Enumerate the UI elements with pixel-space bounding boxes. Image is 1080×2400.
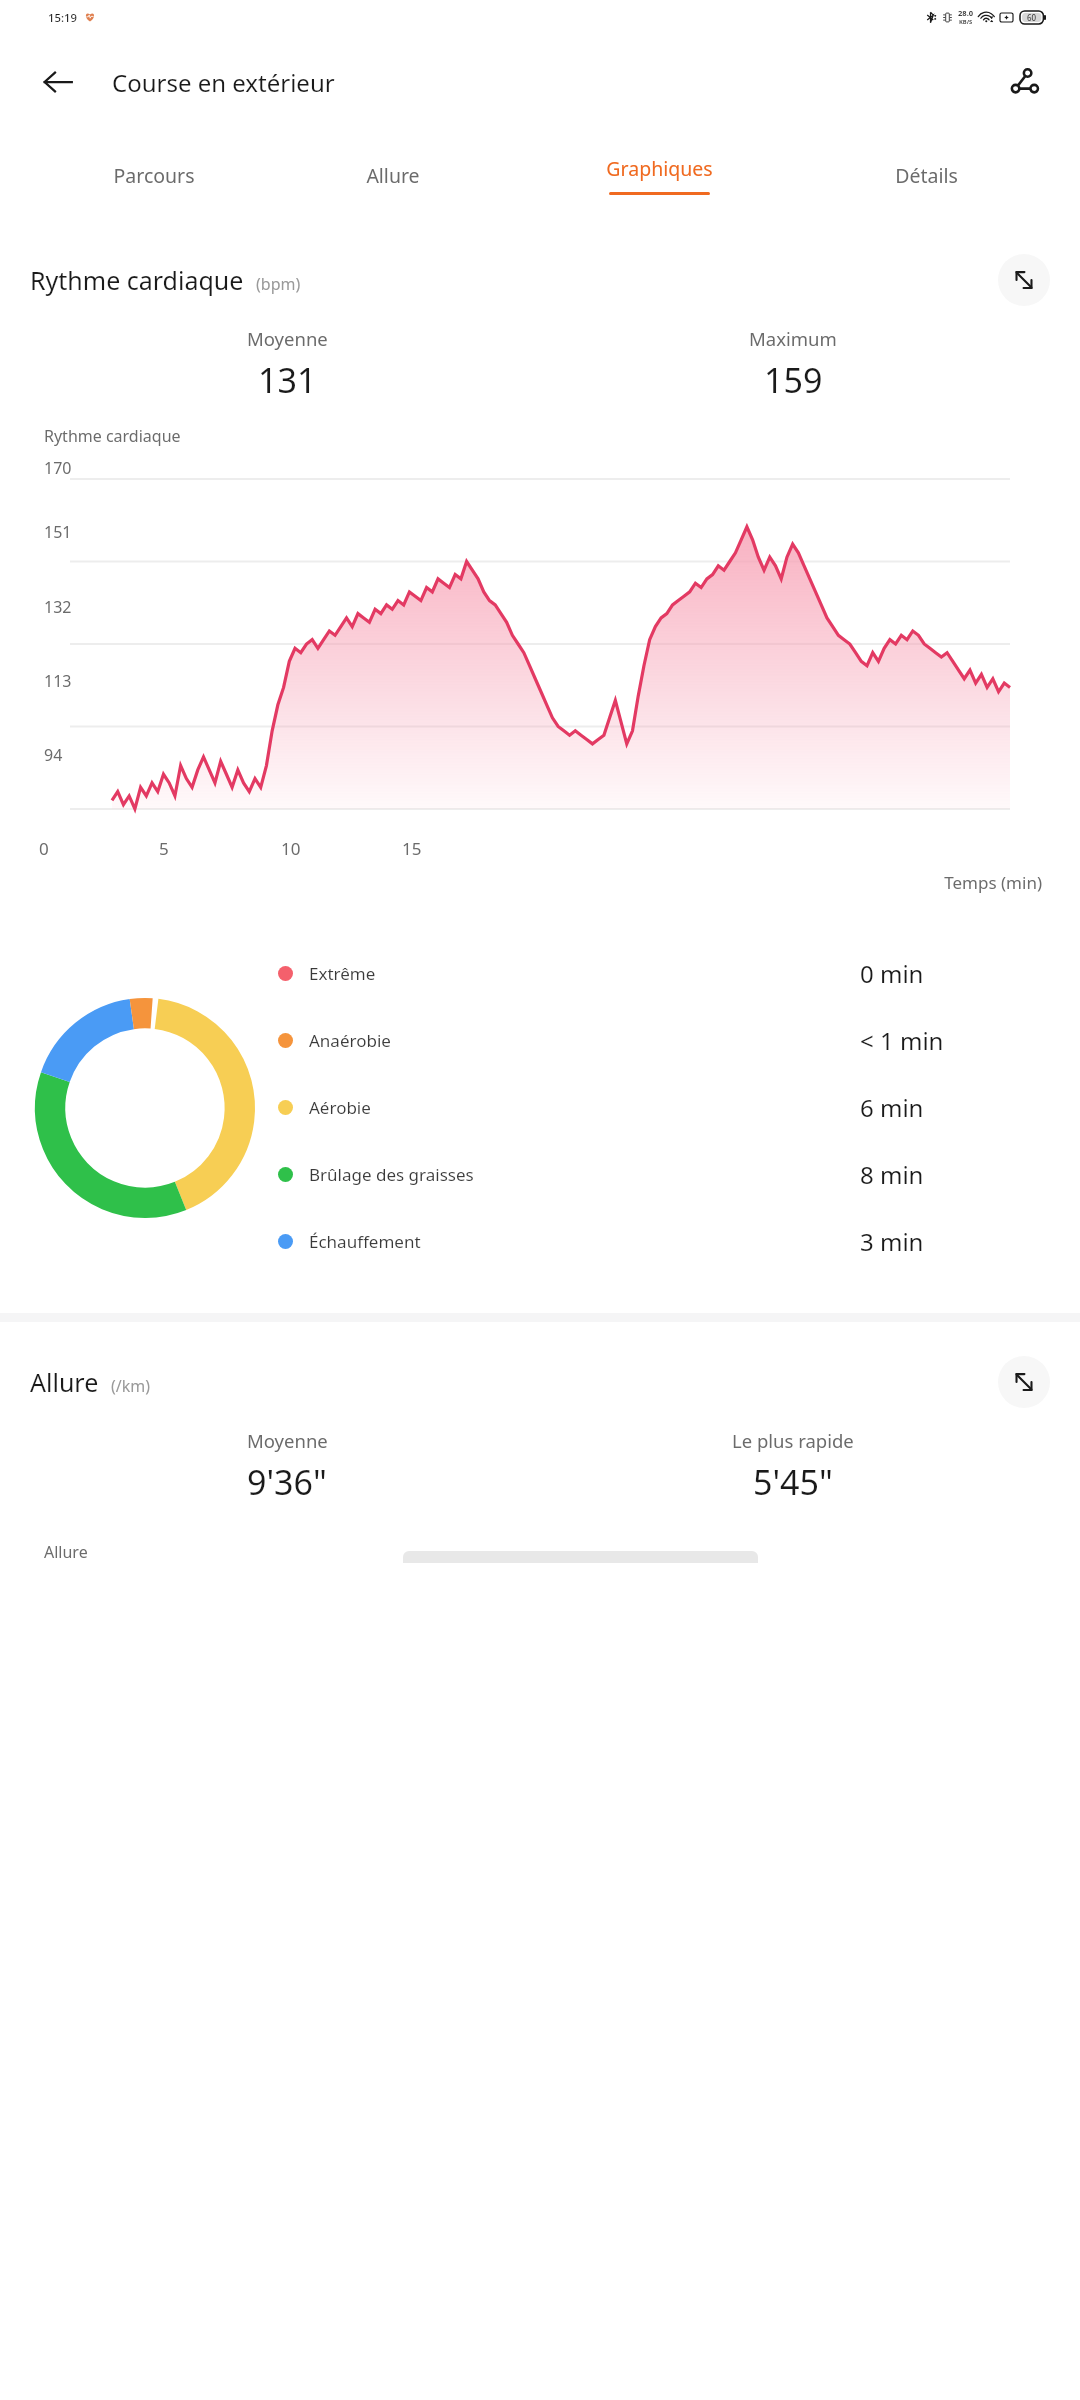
staticText: Rythme cardiaque (30, 263, 244, 297)
staticText: Brûlage des graisses (309, 1163, 474, 1186)
staticText: 15 (402, 837, 422, 860)
staticText: 132 (44, 596, 72, 618)
staticText: Graphiques (606, 155, 713, 182)
staticText: 94 (44, 744, 63, 766)
staticText: Moyenne (247, 326, 328, 351)
staticText: Maximum (749, 326, 837, 351)
button[interactable]: Graphiques (513, 130, 806, 220)
staticText: 15:19 (48, 10, 77, 25)
staticText: (bpm) (256, 273, 301, 295)
staticText: Temps (min) (0, 871, 1042, 894)
staticText: 170 (44, 457, 72, 479)
button[interactable]: Expand chart (998, 254, 1050, 306)
staticText: Échauffement (309, 1230, 421, 1253)
staticText: Allure (44, 1541, 88, 1563)
staticText: 8 min (860, 1158, 924, 1191)
staticText: Allure (366, 162, 420, 189)
staticText: 60 (1027, 12, 1037, 23)
staticText: Parcours (113, 162, 195, 189)
staticText: Aérobie (309, 1096, 371, 1119)
button[interactable]: Aérobie (278, 1074, 1050, 1141)
staticText: < 1 min (860, 1024, 944, 1057)
button[interactable]: Anaérobie (278, 1007, 1050, 1074)
staticText: Anaérobie (309, 1029, 391, 1052)
staticText: 0 min (860, 957, 924, 990)
button[interactable]: Extrême (278, 940, 1050, 1007)
staticText: (/km) (111, 1375, 151, 1397)
staticText: 159 (764, 357, 823, 403)
staticText: 151 (44, 521, 72, 543)
button[interactable]: Share route (996, 54, 1052, 110)
staticText: 9'36" (247, 1459, 327, 1505)
staticText: Détails (895, 162, 958, 189)
button[interactable]: Allure (273, 130, 513, 220)
staticText: 131 (258, 357, 317, 403)
button[interactable]: Expand chart (998, 1356, 1050, 1408)
staticText: KB/S (959, 18, 973, 26)
staticText: Rythme cardiaque (44, 425, 181, 447)
staticText: 6 min (860, 1091, 924, 1124)
button[interactable]: Back (30, 54, 86, 110)
button[interactable]: Échauffement (278, 1208, 1050, 1275)
staticText: Course en extérieur (112, 66, 335, 99)
staticText: 113 (44, 670, 72, 692)
staticText: 3 min (860, 1225, 924, 1258)
staticText: Extrême (309, 962, 376, 985)
staticText: Allure (30, 1365, 99, 1399)
staticText: Le plus rapide (732, 1428, 854, 1453)
staticText: 5 (159, 837, 169, 860)
staticText: Moyenne (247, 1428, 328, 1453)
staticText: 10 (281, 837, 301, 860)
staticText: 28.0 (958, 8, 974, 18)
button[interactable]: Parcours (34, 130, 273, 220)
button[interactable]: Détails (806, 130, 1046, 220)
staticText: 0 (39, 837, 49, 860)
button[interactable]: Brûlage des graisses (278, 1141, 1050, 1208)
staticText: 5'45" (753, 1459, 833, 1505)
